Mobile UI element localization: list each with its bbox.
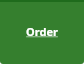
button[interactable]: Order xyxy=(0,0,84,64)
staticText: Order xyxy=(26,24,58,39)
